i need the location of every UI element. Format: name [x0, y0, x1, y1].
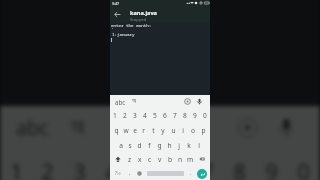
button[interactable]: 2	[32, 148, 63, 180]
staticText: w	[123, 126, 129, 135]
button[interactable]: abc	[113, 95, 127, 108]
button[interactable]: Settings	[182, 96, 193, 107]
button[interactable]: 4	[95, 148, 127, 180]
button[interactable]: u	[168, 123, 178, 138]
staticText: u	[171, 126, 176, 135]
staticText: x	[138, 155, 142, 164]
staticText: abc	[115, 98, 126, 106]
button[interactable]: Voice input	[194, 96, 205, 107]
staticText: 2	[41, 157, 54, 180]
button[interactable]: y	[158, 123, 168, 138]
button[interactable]: 9	[190, 108, 200, 123]
staticText: 4	[143, 111, 147, 120]
button[interactable]: p	[198, 123, 208, 138]
button[interactable]: z	[125, 152, 135, 166]
button[interactable]: ,	[125, 166, 134, 180]
button[interactable]: b	[165, 152, 175, 166]
staticText: 1	[113, 111, 117, 120]
button[interactable]: c	[145, 152, 155, 166]
button[interactable]: 2	[120, 108, 130, 123]
button[interactable]: 7	[170, 108, 180, 123]
staticText: n	[178, 155, 183, 164]
staticText: ,	[129, 170, 131, 177]
staticText: 1	[10, 157, 23, 180]
staticText: g	[157, 141, 162, 150]
staticText: 6	[163, 111, 167, 120]
staticText: z	[128, 155, 132, 164]
button[interactable]: g	[154, 138, 164, 152]
button[interactable]: 0	[200, 108, 210, 123]
button[interactable]: Enter	[197, 169, 207, 179]
staticText: 3	[133, 111, 137, 120]
staticText: v	[158, 155, 162, 164]
button[interactable]: 0	[287, 148, 319, 180]
button[interactable]: 7	[191, 148, 223, 180]
staticText: k	[187, 141, 191, 150]
button[interactable]: 8	[223, 148, 255, 180]
button[interactable]: t	[148, 123, 158, 138]
button[interactable]: ?১০	[111, 166, 124, 180]
staticText: 0	[203, 111, 207, 120]
button[interactable]: a	[116, 138, 125, 152]
button[interactable]: 1	[110, 108, 120, 123]
button[interactable]: q	[112, 123, 121, 138]
button[interactable]: অ	[58, 106, 96, 148]
button[interactable]: অ	[128, 95, 140, 108]
button[interactable]: 3	[130, 108, 140, 123]
button[interactable]: 5	[150, 108, 160, 123]
staticText: m	[187, 155, 194, 164]
button[interactable]: Back	[110, 6, 210, 22]
staticText: h	[167, 141, 172, 150]
button[interactable]: 6	[159, 148, 191, 180]
staticText: 4	[105, 157, 118, 180]
button[interactable]: r	[139, 123, 148, 138]
staticText: d	[137, 141, 142, 150]
staticText: e	[133, 126, 137, 135]
staticText: f	[148, 141, 151, 150]
staticText: 5	[153, 111, 157, 120]
button[interactable]: f	[144, 138, 154, 152]
staticText: .	[190, 170, 192, 177]
button[interactable]: l	[194, 138, 204, 152]
button[interactable]: m	[185, 152, 195, 166]
button[interactable]: n	[175, 152, 185, 166]
button[interactable]: Emoji	[134, 166, 144, 180]
button[interactable]: i	[178, 123, 188, 138]
button[interactable]: h	[164, 138, 174, 152]
button[interactable]: 1	[1, 148, 32, 180]
staticText: r	[142, 126, 145, 135]
button[interactable]: 4	[140, 108, 150, 123]
button[interactable]: k	[184, 138, 194, 152]
button[interactable]: .	[186, 166, 196, 180]
staticText: অ	[71, 117, 84, 138]
staticText: kana.java	[130, 9, 157, 17]
button[interactable]: 8	[180, 108, 190, 123]
button[interactable]: e	[130, 123, 139, 138]
button[interactable]: j	[174, 138, 184, 152]
button[interactable]: x	[135, 152, 145, 166]
button[interactable]: d	[134, 138, 144, 152]
staticText: l	[198, 141, 200, 150]
staticText: o	[191, 126, 195, 135]
staticText: ?১০	[115, 170, 121, 176]
button[interactable]: o	[188, 123, 198, 138]
staticText: b	[168, 155, 173, 164]
button[interactable]: 9	[255, 148, 287, 180]
button[interactable]: 6	[160, 108, 170, 123]
staticText: 0	[297, 157, 310, 180]
button[interactable]: Voice input	[269, 110, 304, 145]
button[interactable]: v	[155, 152, 165, 166]
button[interactable]: w	[121, 123, 130, 138]
staticText: t	[152, 126, 155, 135]
button[interactable]: 3	[63, 148, 95, 180]
button[interactable]: 5	[127, 148, 159, 180]
button[interactable]: Shift	[111, 152, 125, 166]
button[interactable]: s	[125, 138, 134, 152]
button[interactable]: Backspace	[195, 152, 209, 166]
button[interactable]: abc	[10, 106, 55, 148]
staticText: a	[119, 141, 123, 150]
button[interactable]: Back	[112, 6, 123, 22]
staticText: '	[111, 27, 114, 33]
